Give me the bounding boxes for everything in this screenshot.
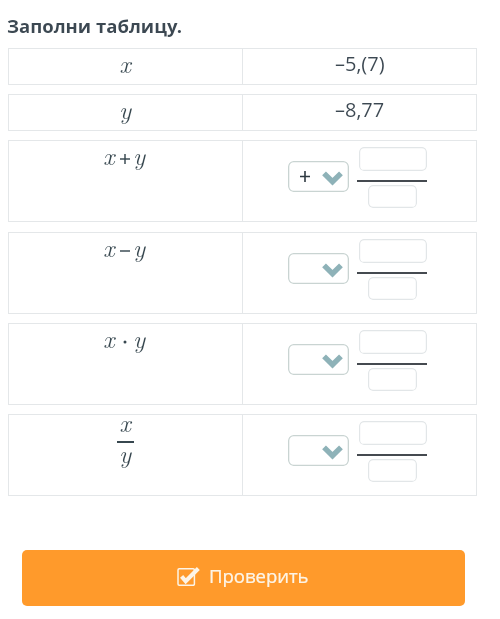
staticText: x: [103, 137, 123, 172]
button[interactable]: Поле для ответа: [368, 277, 417, 300]
staticText: –8,77: [335, 96, 385, 123]
button[interactable]: Выбрать знак действия: [288, 253, 349, 284]
staticText: y: [133, 320, 153, 355]
button[interactable]: Поле для ответа: [359, 421, 427, 445]
button[interactable]: Поле для ответа: [359, 330, 427, 354]
button[interactable]: Выбрать знак действия: [288, 435, 349, 466]
staticText: x: [65, 45, 185, 80]
staticText: y: [65, 91, 185, 126]
button[interactable]: Поле для ответа: [359, 239, 427, 263]
button[interactable]: x: [8, 414, 477, 496]
staticText: Проверить: [209, 563, 309, 588]
staticText: y: [105, 435, 145, 470]
button[interactable]: x: [8, 48, 477, 85]
button[interactable]: y: [8, 94, 477, 131]
staticText: x: [103, 229, 123, 264]
staticText: x: [105, 404, 145, 439]
button[interactable]: Проверить: [22, 550, 465, 606]
staticText: Заполни таблицу.: [7, 13, 182, 38]
button[interactable]: x: [8, 140, 477, 222]
button[interactable]: Поле для ответа: [368, 185, 417, 208]
staticText: y: [133, 137, 153, 172]
button[interactable]: Выбрать знак действия: [288, 161, 349, 192]
staticText: x: [103, 320, 123, 355]
button[interactable]: Поле для ответа: [359, 147, 427, 171]
button[interactable]: Выбрать знак действия: [288, 344, 349, 375]
button[interactable]: x: [8, 323, 477, 405]
button[interactable]: x: [8, 232, 477, 314]
button[interactable]: Поле для ответа: [368, 459, 417, 482]
staticText: –5,(7): [335, 50, 385, 77]
staticText: y: [133, 229, 153, 264]
button[interactable]: Поле для ответа: [368, 368, 417, 391]
